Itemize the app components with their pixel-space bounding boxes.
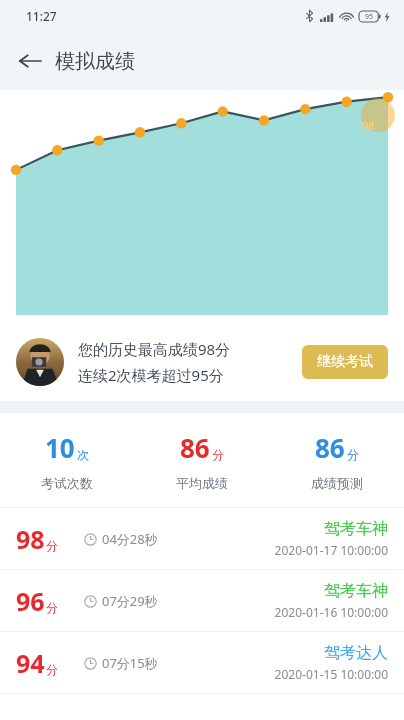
staticText: 继续考试 bbox=[317, 353, 373, 371]
button[interactable]: Back bbox=[10, 41, 50, 81]
staticText: 分 bbox=[46, 600, 58, 615]
staticText: 模拟成绩 bbox=[55, 49, 135, 74]
staticText: 11:27 bbox=[26, 8, 57, 24]
staticText: 连续2次模考超过95分 bbox=[78, 365, 224, 385]
button[interactable]: 94 bbox=[0, 632, 404, 693]
staticText: 2020-01-16 10:00:00 bbox=[274, 604, 388, 620]
staticText: 98 bbox=[362, 118, 375, 133]
button[interactable]: 96 bbox=[0, 570, 404, 631]
staticText: 成绩预测 bbox=[311, 475, 363, 491]
staticText: 驾考车神 bbox=[324, 581, 388, 601]
staticText: 驾考车神 bbox=[324, 519, 388, 539]
staticText: 10 bbox=[45, 430, 75, 465]
staticText: 分 bbox=[46, 662, 58, 677]
staticText: 驾考达人 bbox=[324, 643, 388, 663]
staticText: 07分29秒 bbox=[102, 592, 158, 610]
button[interactable]: 86 bbox=[269, 430, 404, 491]
staticText: 您的历史最高成绩98分 bbox=[78, 339, 231, 359]
staticText: 86 bbox=[180, 430, 210, 465]
staticText: 2020-01-15 10:00:00 bbox=[274, 666, 388, 682]
staticText: 94 bbox=[16, 646, 45, 680]
staticText: 98 bbox=[16, 522, 45, 556]
staticText: 分 bbox=[347, 447, 359, 462]
staticText: 考试次数 bbox=[41, 475, 93, 491]
staticText: 分 bbox=[212, 447, 224, 462]
staticText: 95 bbox=[365, 12, 374, 22]
staticText: 分 bbox=[46, 538, 58, 553]
button[interactable]: 您的历史最高成绩98分 bbox=[0, 323, 404, 401]
staticText: 96 bbox=[16, 584, 45, 618]
staticText: 04分28秒 bbox=[102, 530, 158, 548]
button[interactable]: 继续考试 bbox=[302, 345, 388, 379]
button[interactable]: 98 bbox=[0, 508, 404, 569]
staticText: 07分15秒 bbox=[102, 654, 158, 672]
button[interactable]: 10 bbox=[0, 430, 134, 491]
staticText: 2020-01-17 10:00:00 bbox=[274, 542, 388, 558]
button[interactable]: 86 bbox=[134, 430, 269, 491]
staticText: 86 bbox=[315, 430, 345, 465]
staticText: 次 bbox=[77, 447, 89, 462]
staticText: 平均成绩 bbox=[176, 475, 228, 491]
